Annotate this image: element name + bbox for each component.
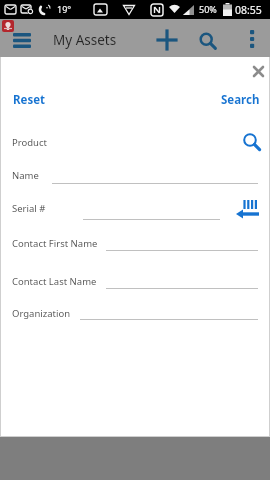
staticText: Search [221, 92, 260, 108]
staticText: Contact First Name [12, 237, 98, 250]
button[interactable] [235, 199, 260, 220]
staticText: Reset [13, 92, 46, 108]
staticText: Organization [12, 307, 71, 320]
button[interactable] [249, 62, 267, 80]
button[interactable]: Reset [13, 92, 46, 108]
button[interactable] [156, 29, 178, 51]
staticText: Name [12, 169, 39, 182]
button[interactable] [197, 30, 220, 53]
button[interactable] [9, 29, 35, 51]
button[interactable] [241, 131, 263, 153]
staticText: Serial # [12, 202, 46, 215]
button[interactable] [242, 29, 262, 49]
staticText: Product [12, 136, 47, 149]
staticText: 19° [57, 3, 72, 15]
staticText: My Assets [53, 31, 117, 49]
staticText: Contact Last Name [12, 275, 97, 288]
staticText: 08:55 [235, 3, 262, 17]
staticText: 50% [199, 3, 217, 15]
button[interactable]: Search [221, 92, 260, 108]
